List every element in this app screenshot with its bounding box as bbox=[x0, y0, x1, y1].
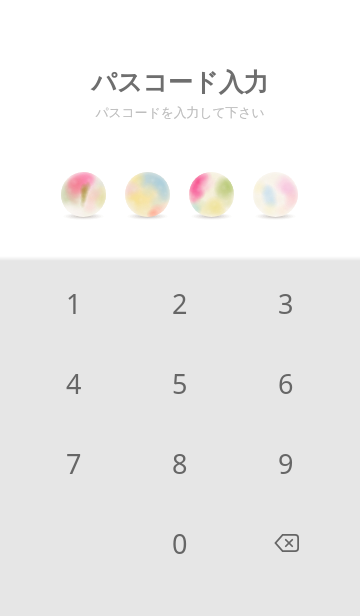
button[interactable]: 0 bbox=[127, 503, 233, 583]
button[interactable]: Delete bbox=[233, 503, 339, 583]
staticText: 6 bbox=[278, 365, 294, 402]
other: Delete bbox=[266, 523, 306, 563]
staticText: 3 bbox=[278, 285, 294, 322]
staticText: 4 bbox=[66, 365, 82, 402]
button[interactable]: 8 bbox=[127, 423, 233, 503]
staticText: パスコード入力 bbox=[91, 67, 269, 98]
button[interactable]: 2 bbox=[127, 263, 233, 343]
button[interactable]: 6 bbox=[233, 343, 339, 423]
staticText: パスコードを入力して下さい bbox=[95, 105, 265, 121]
button[interactable]: 7 bbox=[21, 423, 127, 503]
staticText: 5 bbox=[172, 365, 188, 402]
staticText: 1 bbox=[66, 285, 82, 322]
button[interactable]: 1 bbox=[21, 263, 127, 343]
button[interactable]: 3 bbox=[233, 263, 339, 343]
staticText: 9 bbox=[278, 445, 294, 482]
staticText: 2 bbox=[172, 285, 188, 322]
button[interactable]: 4 bbox=[21, 343, 127, 423]
staticText: 8 bbox=[172, 445, 188, 482]
staticText: 0 bbox=[172, 525, 188, 562]
button[interactable]: 5 bbox=[127, 343, 233, 423]
staticText: 7 bbox=[66, 445, 82, 482]
button[interactable]: 9 bbox=[233, 423, 339, 503]
